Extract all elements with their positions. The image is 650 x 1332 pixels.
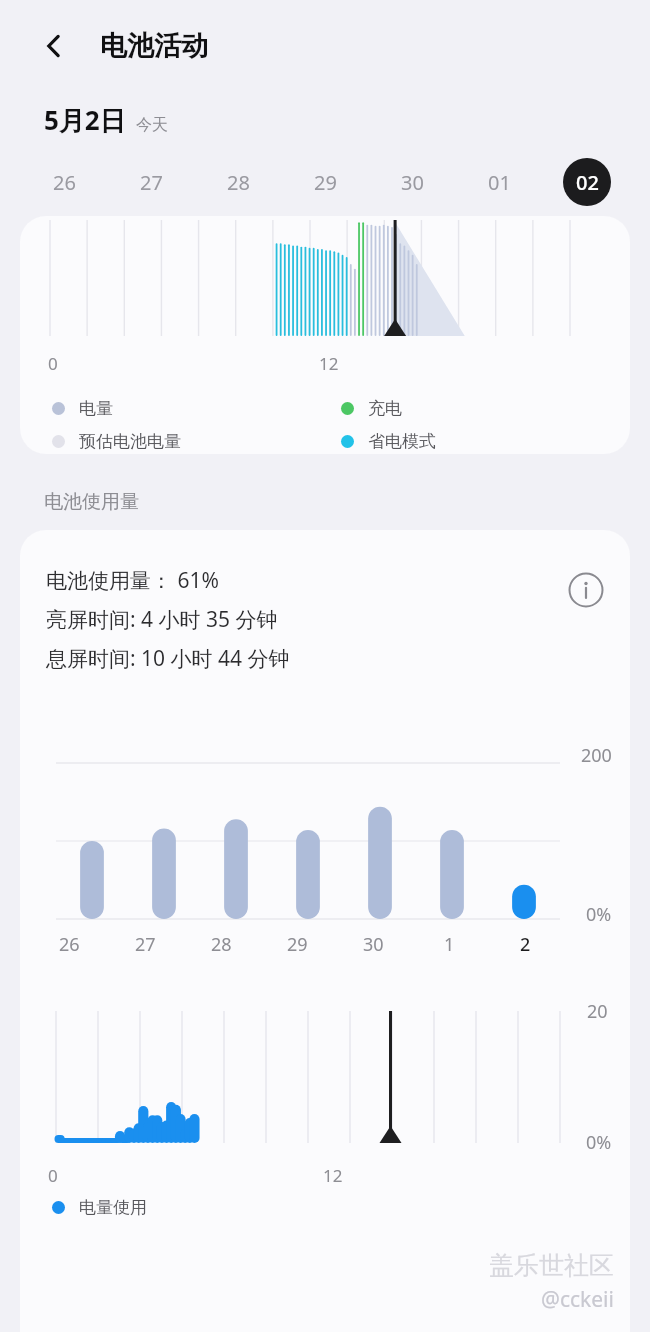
staticText: 1: [444, 932, 455, 957]
staticText: 省电模式: [368, 431, 436, 452]
staticText: 26: [53, 169, 76, 196]
staticText: 29: [287, 932, 308, 957]
staticText: 01: [488, 169, 511, 196]
staticText: @cckeii: [541, 1285, 614, 1314]
staticText: 27: [140, 169, 163, 196]
staticText: 0: [48, 1164, 58, 1187]
staticText: 电池使用量： 61%: [46, 566, 219, 595]
staticText: 5月2日: [44, 102, 126, 138]
staticText: 30: [363, 932, 384, 957]
staticText: 12: [319, 352, 339, 375]
staticText: 电池使用量: [44, 490, 139, 514]
button[interactable]: Back: [28, 20, 80, 72]
button[interactable]: 01: [456, 154, 543, 210]
staticText: 0: [48, 352, 58, 375]
staticText: 20: [587, 999, 608, 1024]
staticText: 息屏时间: 10 小时 44 分钟: [46, 644, 290, 673]
staticText: 今天: [136, 115, 168, 135]
button[interactable]: 30: [369, 154, 456, 210]
staticText: 200: [581, 743, 612, 768]
staticText: 26: [59, 932, 80, 957]
staticText: 27: [135, 932, 156, 957]
staticText: 亮屏时间: 4 小时 35 分钟: [46, 605, 278, 634]
button[interactable]: 0: [20, 216, 630, 454]
staticText: 电量使用: [79, 1197, 147, 1218]
staticText: 电池活动: [100, 29, 208, 63]
staticText: 预估电池电量: [79, 431, 181, 452]
staticText: 02: [576, 169, 599, 196]
staticText: 充电: [368, 398, 402, 419]
staticText: 电量: [79, 398, 113, 419]
button[interactable]: Info: [564, 568, 608, 612]
staticText: 30: [401, 169, 424, 196]
staticText: 12: [323, 1164, 343, 1187]
staticText: 28: [211, 932, 232, 957]
staticText: 盖乐世社区: [489, 1250, 614, 1281]
button[interactable]: 29: [282, 154, 369, 210]
staticText: 2: [520, 932, 531, 957]
staticText: 0%: [586, 902, 612, 927]
button[interactable]: 电池使用量： 61%: [20, 530, 630, 1332]
staticText: 29: [314, 169, 337, 196]
staticText: 28: [227, 169, 250, 196]
button[interactable]: 28: [195, 154, 282, 210]
button[interactable]: 27: [108, 154, 195, 210]
button[interactable]: 02: [543, 154, 630, 210]
button[interactable]: 26: [20, 154, 108, 210]
staticText: 0%: [586, 1130, 612, 1155]
